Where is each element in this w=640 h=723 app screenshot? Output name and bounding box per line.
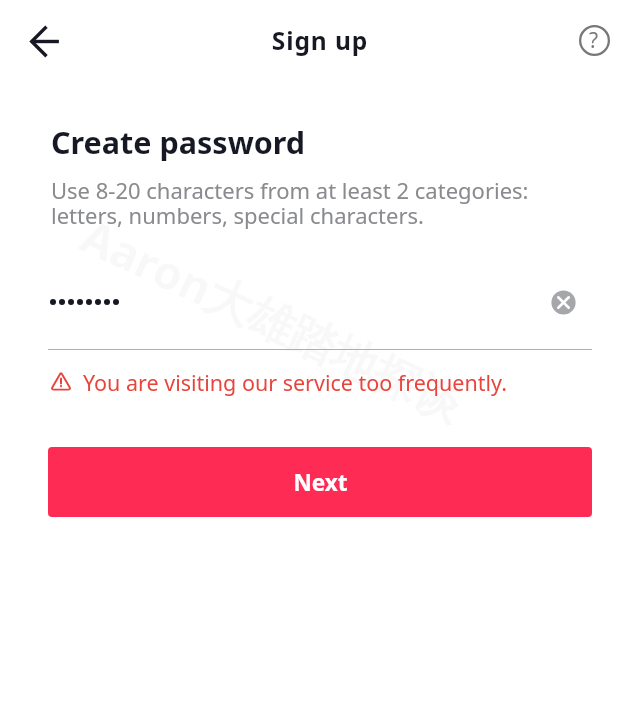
staticText: Create password (51, 121, 306, 163)
button[interactable]: Password (48, 293, 592, 349)
button[interactable]: Back (20, 17, 68, 65)
button[interactable]: Clear password (543, 282, 583, 322)
staticText: You are visiting our service too frequen… (83, 368, 507, 397)
staticText: Use 8-20 characters from at least 2 cate… (51, 175, 529, 231)
button[interactable]: Next (48, 447, 592, 517)
staticText: Next (293, 467, 348, 498)
staticText: Sign up (0, 24, 640, 57)
staticText: Aaron大雄踏地探谈 (71, 204, 473, 436)
staticText: ? (589, 26, 599, 55)
button[interactable]: Help (571, 17, 617, 63)
